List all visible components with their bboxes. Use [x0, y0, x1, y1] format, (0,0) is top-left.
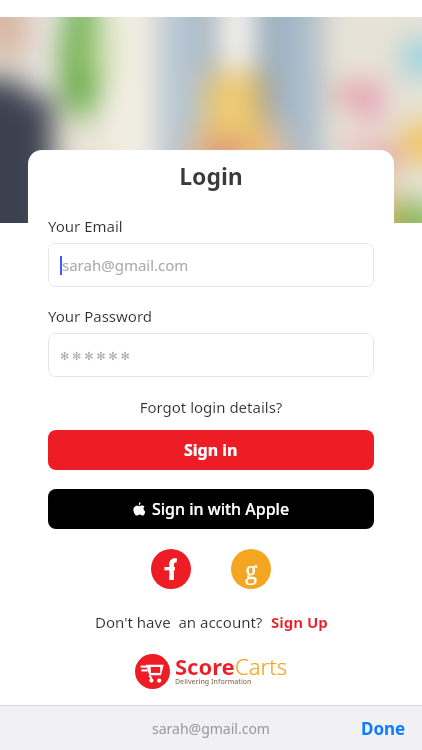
staticText: Login — [28, 160, 394, 191]
staticText: Sign Up — [271, 612, 328, 632]
staticText: Carts — [235, 651, 287, 681]
staticText: Sign in — [184, 439, 238, 461]
staticText: g — [245, 554, 258, 585]
staticText: sarah@gmail.com — [62, 255, 189, 275]
staticText: Score — [175, 651, 235, 681]
button[interactable]: Sign in — [48, 430, 374, 470]
staticText: Delivering Information — [175, 677, 252, 687]
button[interactable]: Sign Up — [271, 612, 328, 632]
button[interactable]: Done — [361, 717, 406, 740]
button[interactable]: sarah@gmail.com — [48, 243, 374, 287]
staticText: Done — [361, 717, 406, 740]
staticText: Don't have an account? — [95, 612, 263, 632]
button[interactable]: ✻ ✻ ✻ ✻ ✻ ✻ — [48, 333, 374, 377]
button[interactable]: Forgot login details? — [28, 397, 394, 417]
button[interactable]: Sign in with Google — [231, 549, 271, 589]
staticText: Your Email — [48, 216, 123, 236]
staticText: Your Password — [48, 306, 153, 326]
staticText: ✻ ✻ ✻ ✻ ✻ ✻ — [60, 348, 130, 363]
button[interactable]: Sign in with Apple — [48, 489, 374, 529]
staticText: Sign in with Apple — [152, 498, 290, 520]
button[interactable]: Sign in with Facebook — [151, 549, 191, 589]
staticText: sarah@gmail.com — [152, 719, 270, 738]
